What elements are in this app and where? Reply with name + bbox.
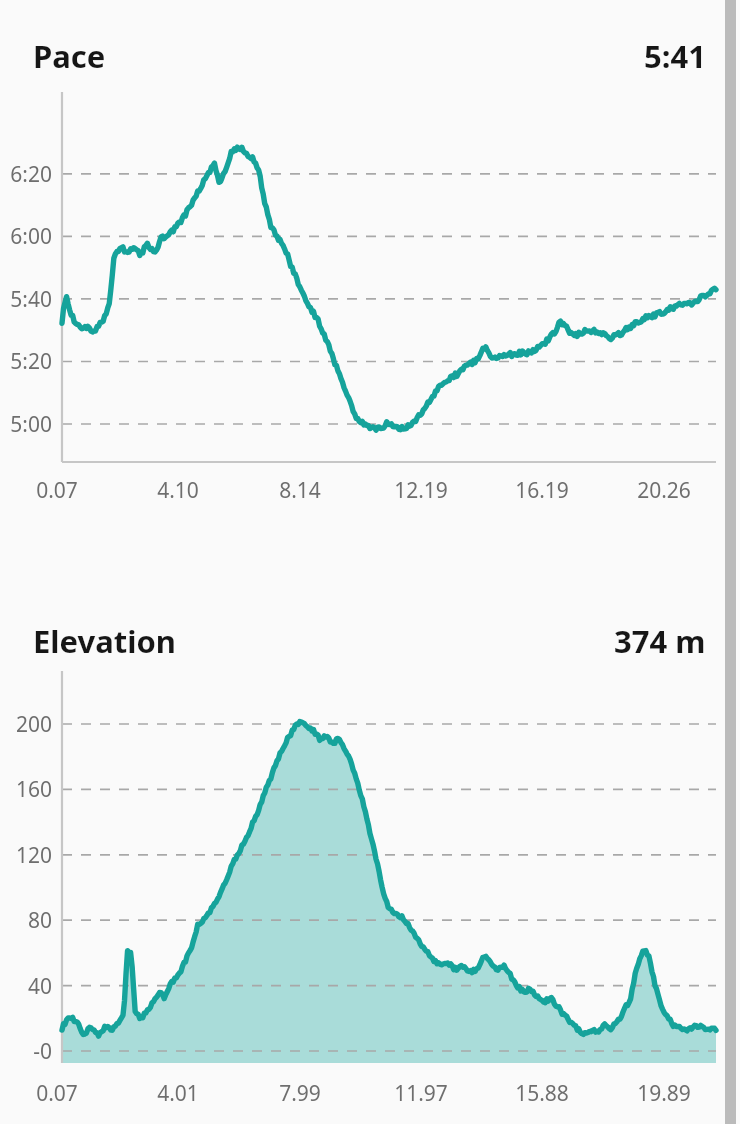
staticText: 200 xyxy=(0,710,52,739)
staticText: 11.97 xyxy=(376,1079,466,1108)
staticText: 120 xyxy=(0,841,52,870)
staticText: 4.01 xyxy=(133,1079,223,1108)
staticText: 0.07 xyxy=(12,476,102,505)
staticText: 160 xyxy=(0,775,52,804)
staticText: 6:00 xyxy=(0,222,52,251)
staticText: 8.14 xyxy=(255,476,345,505)
staticText: 7.99 xyxy=(255,1079,345,1108)
staticText: 19.89 xyxy=(619,1079,709,1108)
staticText: 80 xyxy=(0,906,52,935)
staticText: 15.88 xyxy=(497,1079,587,1108)
staticText: 12.19 xyxy=(376,476,466,505)
staticText: 20.26 xyxy=(619,476,709,505)
staticText: 0.07 xyxy=(12,1079,102,1108)
button[interactable]: Elevation xyxy=(0,613,740,669)
staticText: 6:20 xyxy=(0,160,52,189)
staticText: 4.10 xyxy=(133,476,223,505)
staticText: 5:20 xyxy=(0,347,52,376)
staticText: 374 m xyxy=(614,620,706,662)
button[interactable]: Elevation chart xyxy=(0,669,740,1124)
staticText: 5:40 xyxy=(0,285,52,314)
staticText: Elevation xyxy=(33,620,177,662)
button[interactable]: Pace chart xyxy=(0,84,740,559)
staticText: Pace xyxy=(33,35,106,77)
button[interactable]: Pace xyxy=(0,28,740,84)
staticText: 5:41 xyxy=(644,35,706,77)
staticText: 16.19 xyxy=(497,476,587,505)
staticText: 40 xyxy=(0,972,52,1001)
staticText: -0 xyxy=(0,1037,52,1066)
staticText: 5:00 xyxy=(0,410,52,439)
